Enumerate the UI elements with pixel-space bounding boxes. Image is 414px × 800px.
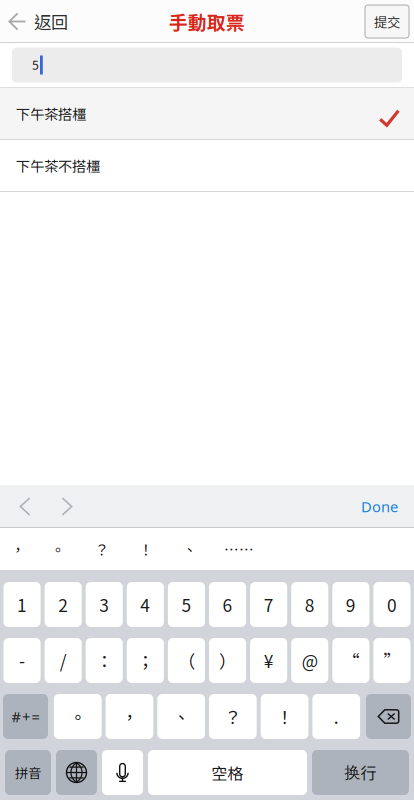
button[interactable]: 空格 [148,750,307,795]
button[interactable]: Dictation [102,750,143,795]
button[interactable]: 换行 [312,750,409,795]
staticText: ： [96,648,113,673]
staticText: 、 [173,704,190,729]
button[interactable]: ！ [124,528,168,570]
staticText: 、 [182,538,197,560]
button[interactable]: ， [106,694,153,739]
staticText: 提交 [374,12,400,31]
staticText: 7 [264,592,274,617]
button[interactable]: 0 [373,582,410,627]
staticText: 下午茶不搭橿 [16,155,100,176]
button[interactable]: 4 [127,582,164,627]
staticText: 手動取票 [169,8,245,35]
button[interactable]: …… [212,528,266,570]
button[interactable]: . [312,694,360,739]
button[interactable]: （ [168,638,205,683]
button[interactable]: Done [349,485,410,528]
staticText: 4 [140,592,150,617]
button[interactable]: 拼音 [5,750,51,795]
staticText: 空格 [211,761,243,784]
staticText: ？ [94,538,109,560]
staticText: ？ [224,704,241,729]
staticText: 9 [346,592,356,617]
staticText: 8 [305,592,315,617]
button[interactable]: 、 [168,528,212,570]
staticText: ！ [276,704,293,729]
staticText: . [334,704,339,729]
button[interactable]: 6 [209,582,246,627]
button[interactable]: 返回 [0,0,76,42]
button[interactable]: 下午茶不搭橿 [0,140,414,191]
staticText: 5 [32,57,39,73]
button[interactable]: 7 [250,582,287,627]
staticText: …… [224,538,254,560]
staticText: 下午茶搭橿 [16,103,86,124]
staticText: ¥ [264,648,274,673]
staticText: 6 [222,592,232,617]
staticText: 返回 [34,9,68,34]
button[interactable]: / [45,638,82,683]
button[interactable]: Next field [46,485,88,528]
staticText: ” [383,648,400,673]
button[interactable]: #+= [3,694,48,739]
staticText: / [60,648,67,673]
staticText: 换行 [344,761,376,784]
button[interactable]: ！ [261,694,308,739]
button[interactable]: ” [373,638,410,683]
staticText: （ [178,648,195,673]
staticText: 3 [99,592,109,617]
button[interactable]: - [3,638,41,683]
button[interactable]: 、 [157,694,205,739]
button[interactable]: 5 [168,582,205,627]
button[interactable]: ） [209,638,246,683]
staticText: ！ [138,538,153,560]
button[interactable]: 9 [332,582,369,627]
button[interactable]: 2 [45,582,82,627]
button[interactable]: Previous field [4,485,46,528]
button[interactable]: ， [0,528,36,570]
staticText: ， [10,538,25,560]
button[interactable]: ： [86,638,123,683]
staticText: “ [342,648,359,673]
staticText: #+= [11,707,40,726]
button[interactable]: Next keyboard [56,750,97,795]
button[interactable]: 3 [86,582,123,627]
staticText: Done [361,497,398,516]
button[interactable]: 1 [3,582,41,627]
staticText: 。 [50,538,65,560]
button[interactable]: @ [291,638,328,683]
button[interactable]: 8 [291,582,328,627]
button[interactable]: 。 [54,694,102,739]
staticText: 0 [387,592,397,617]
staticText: 1 [17,592,27,617]
staticText: @ [302,648,318,673]
button[interactable]: 。 [36,528,80,570]
staticText: 2 [58,592,68,617]
staticText: ， [121,704,138,729]
staticText: 5 [181,592,191,617]
staticText: 拼音 [15,763,41,782]
button[interactable]: “ [332,638,369,683]
button[interactable]: ¥ [250,638,287,683]
staticText: 。 [69,704,86,729]
button[interactable]: Delete [366,694,411,739]
button[interactable]: 提交 [365,5,409,38]
button[interactable]: ； [127,638,164,683]
button[interactable]: ？ [80,528,124,570]
staticText: - [19,648,25,673]
staticText: ） [219,648,236,673]
button[interactable]: 下午茶搭橿 [0,88,414,139]
staticText: ； [137,648,154,673]
button[interactable]: ？ [209,694,257,739]
